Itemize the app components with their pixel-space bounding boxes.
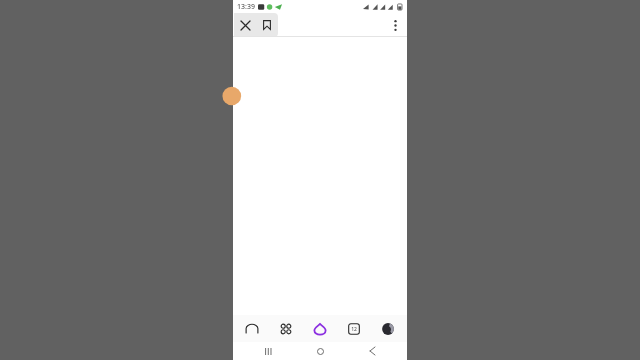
button[interactable]: Profile <box>373 315 403 342</box>
button[interactable]: Home <box>237 315 267 342</box>
button[interactable]: Back <box>355 342 389 360</box>
button[interactable]: Apps <box>271 315 301 342</box>
button[interactable]: More options <box>383 13 407 37</box>
button[interactable]: Recents <box>251 342 285 360</box>
button[interactable]: Home <box>303 342 337 360</box>
button[interactable]: Tabs <box>339 315 369 342</box>
button[interactable]: Close <box>234 14 256 36</box>
staticText: 13:39 <box>237 2 255 12</box>
button[interactable]: Bookmark <box>256 14 278 36</box>
staticText: 12 <box>351 326 357 333</box>
button[interactable]: Assistant <box>305 315 335 342</box>
